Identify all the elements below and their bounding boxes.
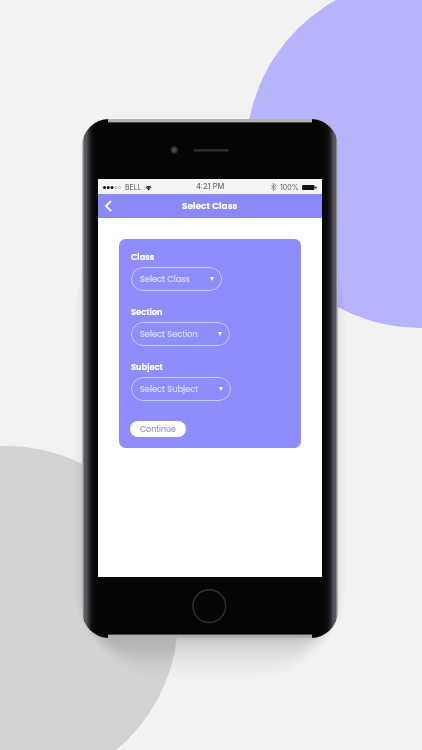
staticText: Select Class <box>140 273 190 285</box>
button[interactable]: Back <box>98 194 119 218</box>
staticText: Continue <box>140 424 176 435</box>
button[interactable]: Select Class <box>131 267 222 291</box>
staticText: BELL <box>125 183 142 191</box>
staticText: Subject <box>131 361 163 373</box>
staticText: Select Subject <box>140 383 199 395</box>
staticText: Class <box>131 251 155 263</box>
button[interactable]: Select Subject <box>131 377 231 401</box>
staticText: Select Section <box>140 328 198 340</box>
staticText: 4:21 PM <box>196 182 225 191</box>
button[interactable]: Select Section <box>131 322 230 346</box>
staticText: Select Class <box>182 200 238 213</box>
button[interactable]: Continue <box>130 421 186 437</box>
staticText: 100% <box>280 183 299 191</box>
staticText: Section <box>131 306 163 318</box>
